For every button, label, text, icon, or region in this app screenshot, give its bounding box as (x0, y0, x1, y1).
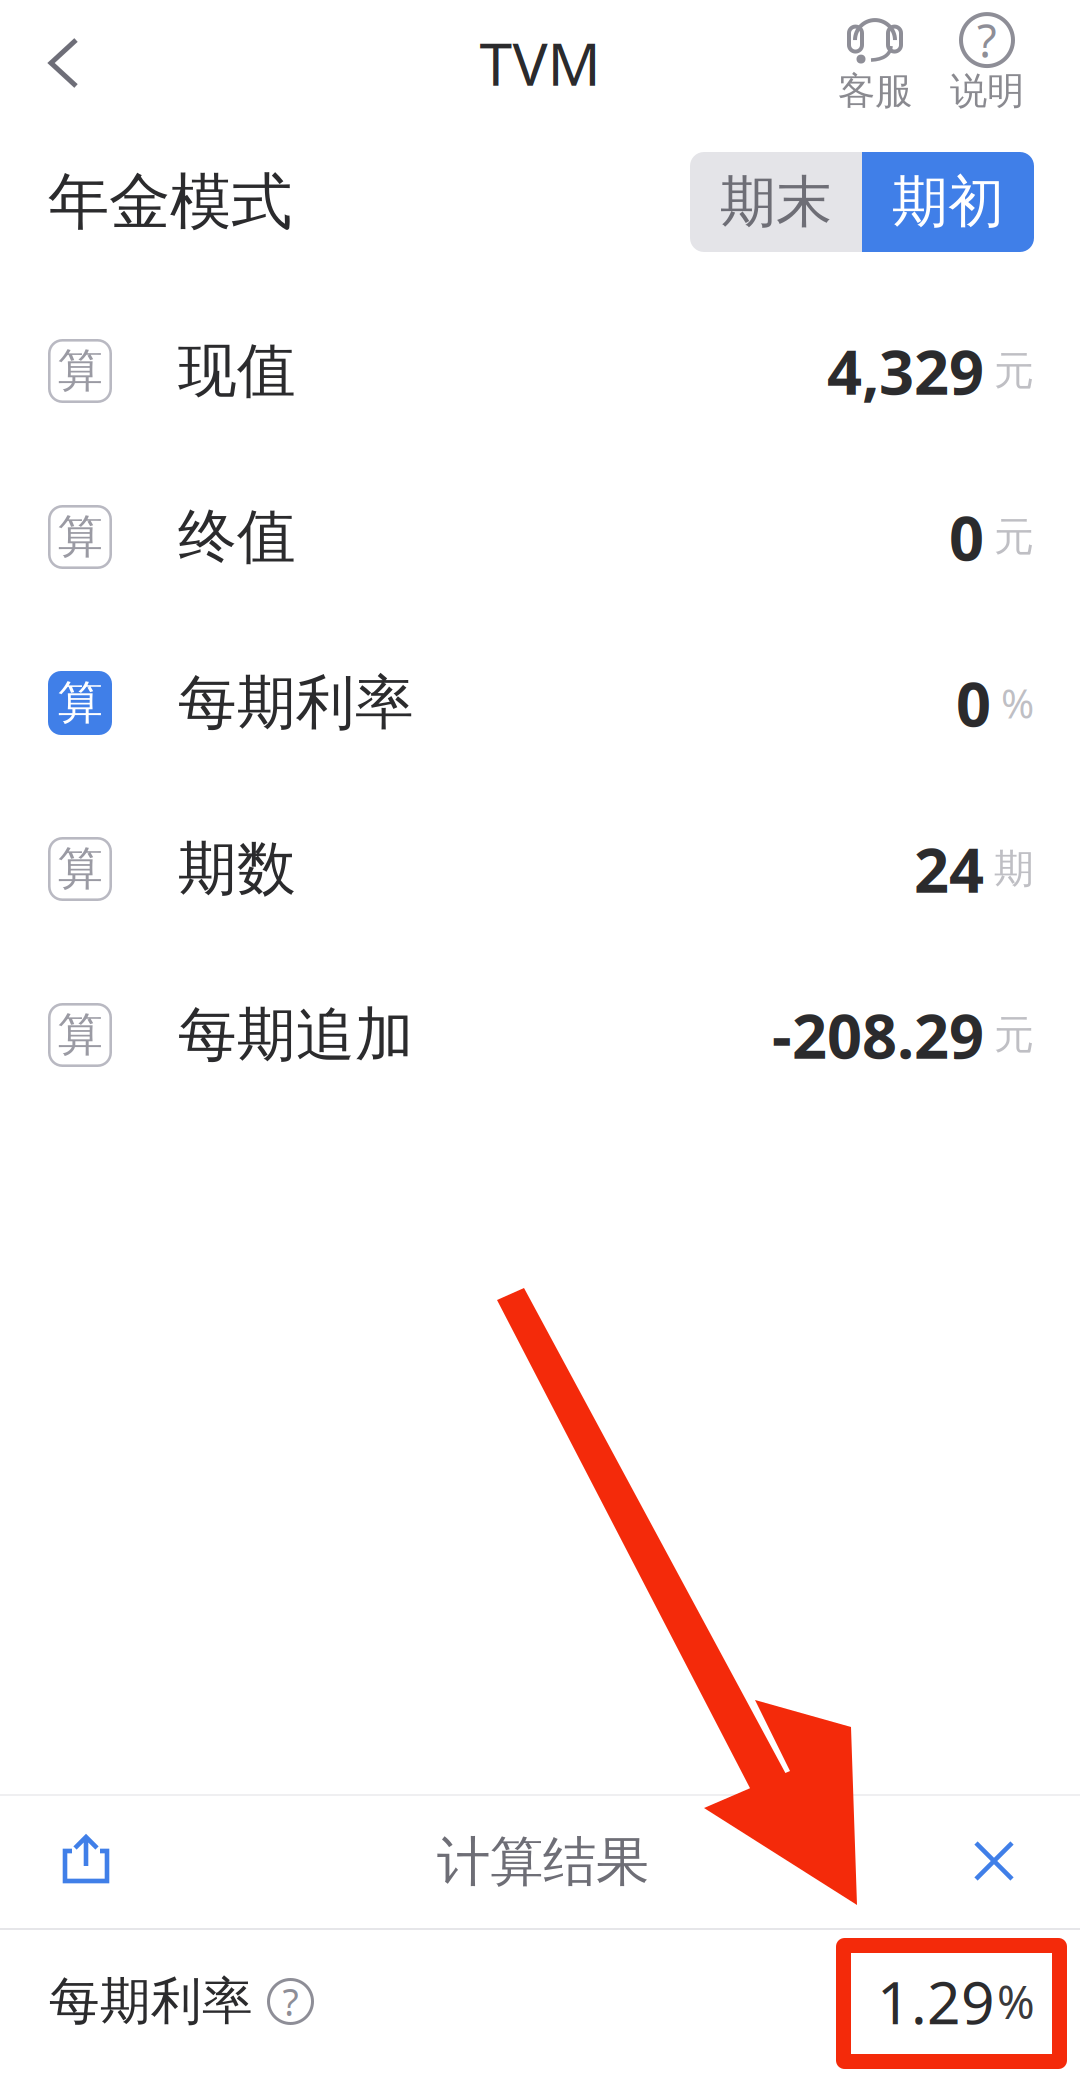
staticText: 终值 (178, 501, 296, 573)
staticText: 每期利率 (49, 1970, 253, 2033)
button[interactable]: 期初 (862, 152, 1034, 252)
staticText: 期 (994, 844, 1034, 893)
staticText: 算 (57, 675, 102, 731)
staticText: 现值 (178, 335, 296, 407)
staticText: 元 (994, 346, 1034, 395)
staticText: 期初 (892, 168, 1004, 236)
staticText: 0 (956, 662, 991, 744)
button[interactable]: 客服 (819, 4, 931, 122)
staticText: % (997, 1971, 1035, 2032)
button[interactable]: 算 (0, 786, 1080, 952)
staticText: 计算结果 (437, 1829, 649, 1895)
button[interactable]: ? (931, 4, 1080, 122)
staticText: 每期利率 (178, 667, 414, 739)
staticText: ? (977, 10, 997, 70)
staticText: 说明 (950, 68, 1024, 114)
staticText: 每期追加 (178, 999, 414, 1071)
staticText: 期数 (178, 833, 296, 905)
staticText: 元 (994, 1010, 1034, 1059)
button[interactable]: Share (0, 1796, 144, 1928)
staticText: ? (282, 1977, 298, 2026)
staticText: TVM (479, 24, 600, 102)
staticText: 算 (57, 343, 102, 399)
button[interactable]: 算 (0, 454, 1080, 620)
button[interactable]: Close (942, 1796, 1080, 1928)
button[interactable]: 期末 (690, 152, 862, 252)
button[interactable]: 算 (0, 620, 1080, 786)
button[interactable]: 算 (0, 288, 1080, 454)
staticText: -208.29 (772, 994, 984, 1076)
staticText: 24 (914, 828, 984, 910)
staticText: 元 (994, 512, 1034, 561)
staticText: 1.29 (877, 1962, 995, 2040)
staticText: 4,329 (827, 330, 984, 412)
staticText: 期末 (720, 168, 832, 236)
button[interactable]: Back (0, 1, 110, 125)
staticText: 0 (949, 496, 984, 578)
staticText: 算 (57, 841, 102, 897)
staticText: % (1001, 676, 1034, 729)
staticText: 年金模式 (48, 164, 292, 240)
staticText: 客服 (838, 68, 912, 114)
staticText: 算 (57, 1007, 102, 1063)
staticText: 算 (57, 509, 102, 565)
button[interactable]: 算 (0, 952, 1080, 1118)
